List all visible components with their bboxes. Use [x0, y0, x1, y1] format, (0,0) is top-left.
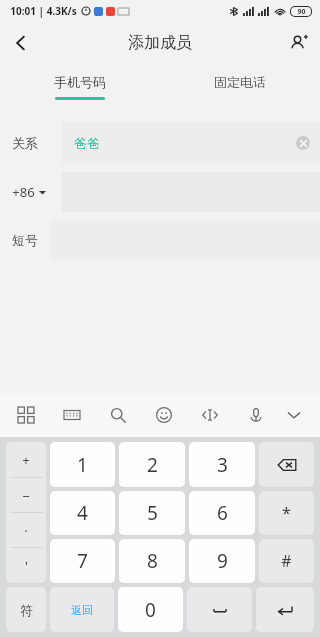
button[interactable]: # — [259, 539, 314, 583]
staticText: 添加成员 — [128, 33, 192, 53]
button[interactable]: * — [259, 491, 314, 535]
staticText: 1 — [77, 452, 88, 478]
button[interactable]: Emoji — [152, 403, 176, 427]
staticText: 固定电话 — [214, 74, 266, 90]
button[interactable]: 固定电话 — [160, 64, 320, 110]
button[interactable]: 返回 — [50, 587, 114, 632]
staticText: ' — [25, 557, 28, 575]
button[interactable]: − — [6, 478, 46, 513]
staticText: − — [22, 487, 30, 505]
button[interactable]: Apps — [14, 403, 38, 427]
button[interactable]: 7 — [50, 539, 115, 583]
staticText: + — [22, 451, 30, 469]
button[interactable]: 2 — [119, 442, 185, 487]
button[interactable]: Search — [106, 403, 130, 427]
staticText: 短号 — [12, 232, 38, 248]
button[interactable]: Clear — [296, 136, 310, 150]
staticText: 符 — [20, 602, 33, 618]
button[interactable]: Delete — [259, 442, 314, 487]
staticText: 0 — [145, 597, 156, 623]
staticText: 6 — [217, 500, 228, 526]
staticText: 9 — [217, 548, 228, 574]
button[interactable]: 1 — [50, 442, 115, 487]
button[interactable]: 8 — [119, 539, 185, 583]
button[interactable]: 手机号码 — [0, 64, 160, 110]
staticText: 3 — [217, 452, 228, 478]
button[interactable]: · — [6, 513, 46, 548]
staticText: +86 — [12, 183, 35, 201]
staticText: 手机号码 — [54, 74, 106, 90]
staticText: 7 — [77, 548, 88, 574]
button[interactable]: Cursor — [198, 403, 222, 427]
button[interactable]: Add contact — [278, 22, 320, 64]
button[interactable]: +86 — [0, 172, 320, 212]
staticText: 关系 — [12, 135, 38, 151]
button[interactable]: 6 — [189, 491, 255, 535]
staticText: 10:01 | 4.3K/s — [10, 4, 77, 18]
staticText: 2 — [147, 452, 158, 478]
staticText: 8 — [147, 548, 158, 574]
button[interactable]: Keyboard — [60, 403, 84, 427]
button[interactable]: ' — [6, 548, 46, 583]
button[interactable]: 3 — [189, 442, 255, 487]
button[interactable]: 4 — [50, 491, 115, 535]
button[interactable]: 短号 — [0, 220, 320, 260]
button[interactable]: Back — [0, 22, 42, 64]
button[interactable]: + — [6, 442, 46, 478]
button[interactable]: 关系 — [0, 122, 320, 164]
button[interactable]: 5 — [119, 491, 185, 535]
button[interactable]: Voice — [244, 403, 268, 427]
staticText: 90 — [297, 7, 306, 16]
staticText: # — [281, 550, 292, 572]
button[interactable]: 0 — [118, 587, 183, 632]
staticText: * — [282, 502, 291, 524]
staticText: · — [24, 522, 28, 540]
button[interactable]: Enter — [256, 587, 314, 632]
staticText: 返回 — [71, 603, 93, 617]
staticText: 4 — [77, 500, 88, 526]
button[interactable]: 9 — [189, 539, 255, 583]
staticText: 爸爸 — [74, 135, 100, 151]
button[interactable]: 符 — [6, 587, 46, 632]
button[interactable]: Hide keyboard — [282, 403, 306, 427]
button[interactable]: Space — [187, 587, 252, 632]
staticText: 5 — [147, 500, 158, 526]
